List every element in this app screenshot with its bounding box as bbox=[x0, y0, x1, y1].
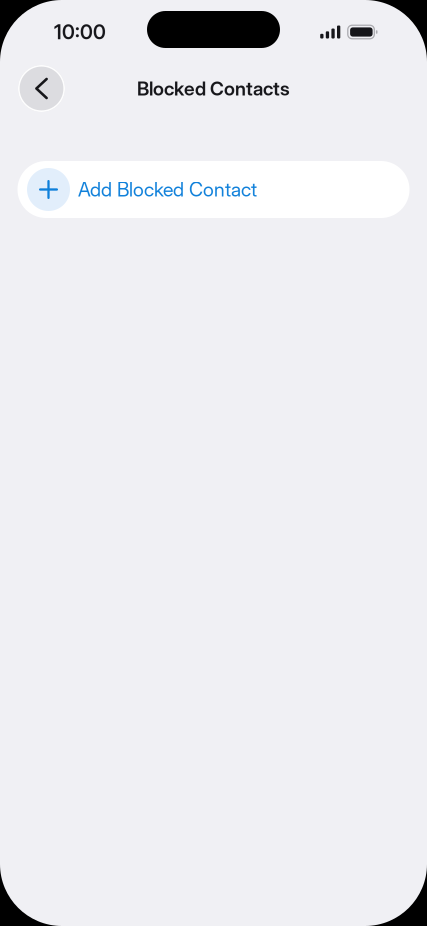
staticText: Blocked Contacts bbox=[137, 77, 290, 100]
button[interactable]: Add Blocked Contact bbox=[17, 161, 409, 218]
staticText: Add Blocked Contact bbox=[78, 178, 257, 201]
button[interactable]: Back bbox=[18, 65, 65, 112]
staticText: 10:00 bbox=[54, 20, 106, 44]
